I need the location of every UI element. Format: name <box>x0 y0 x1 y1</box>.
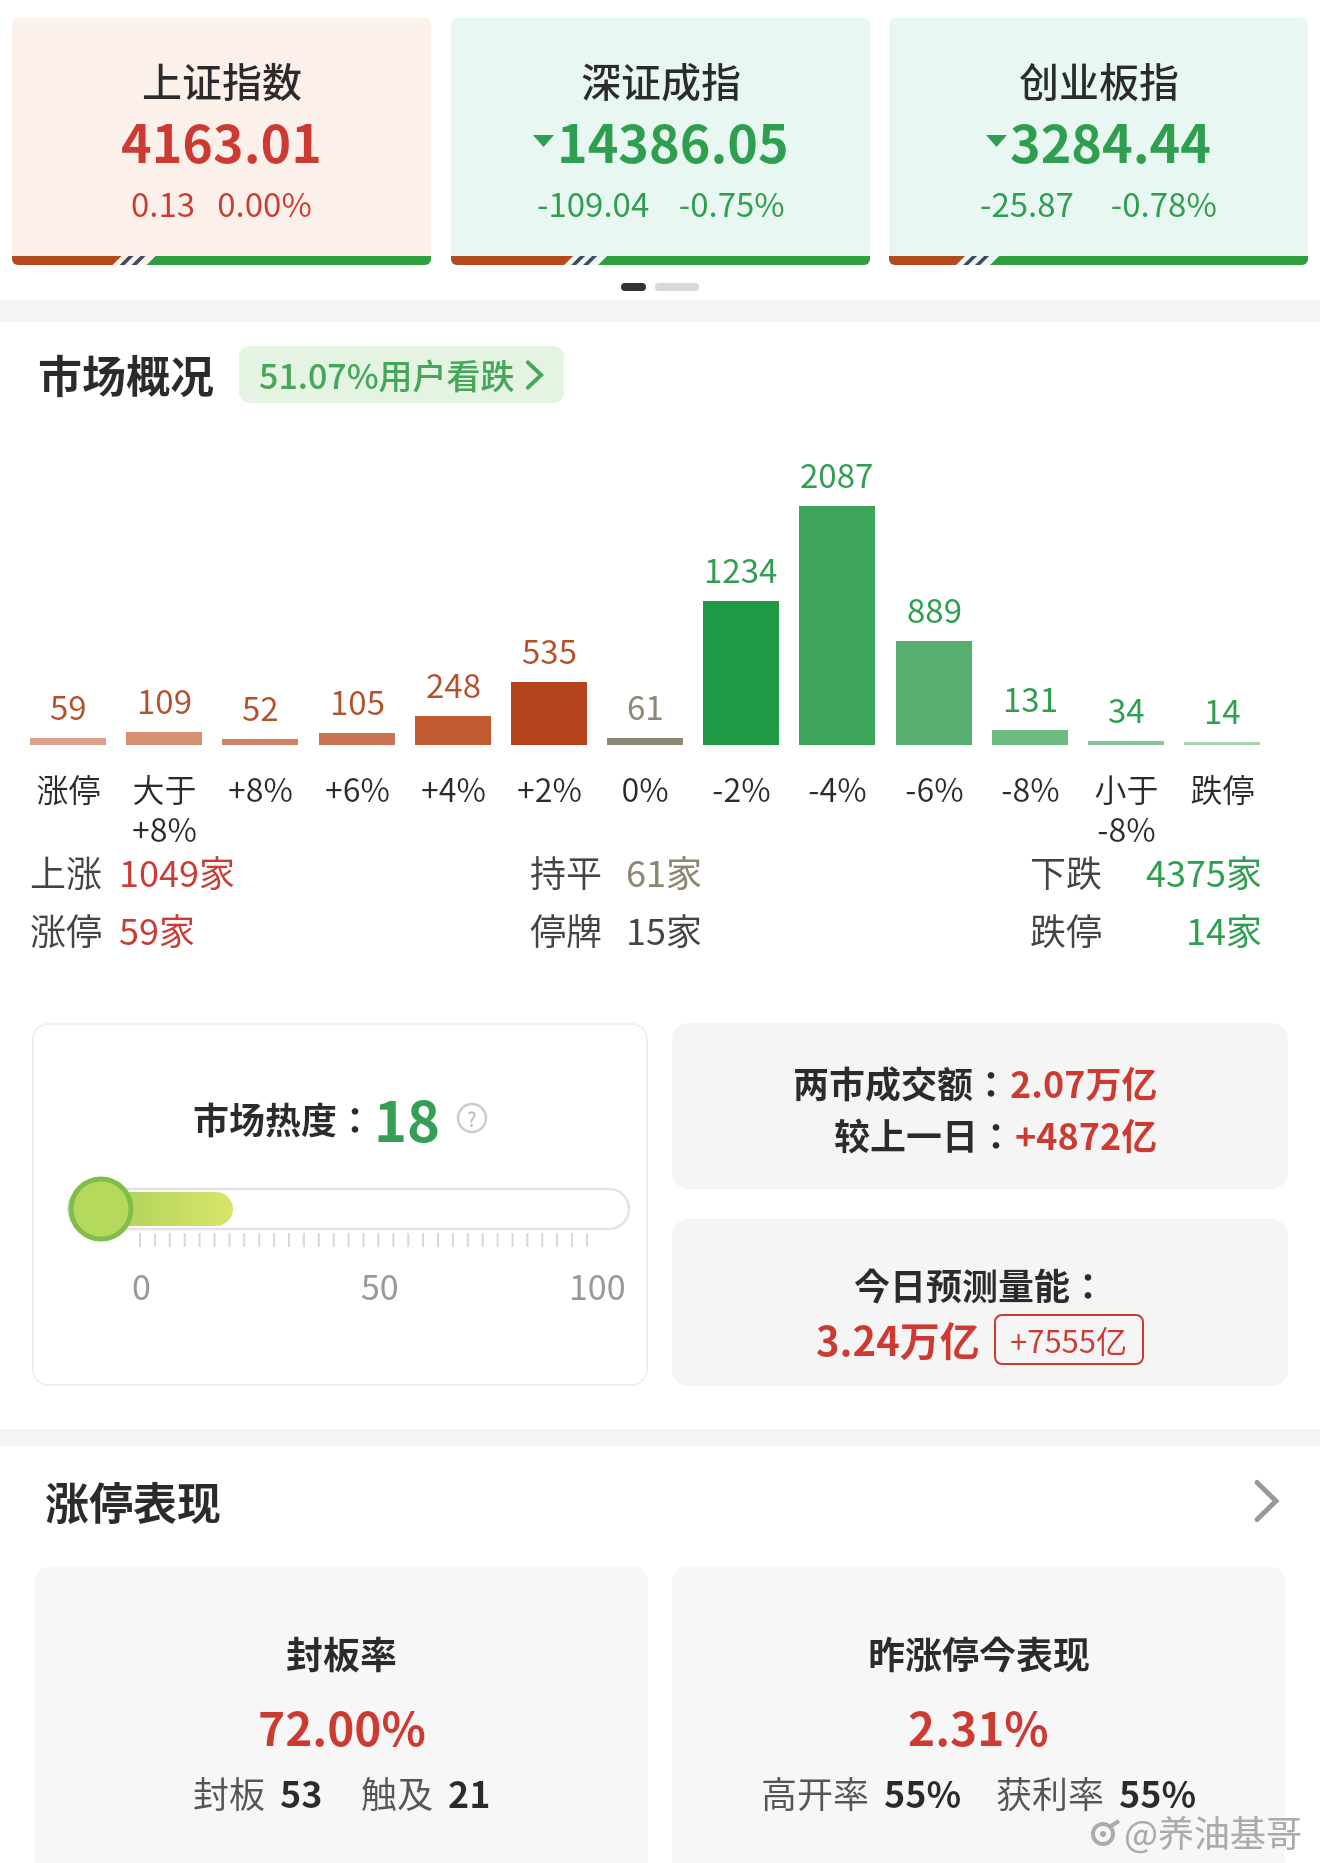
staticText: -8% <box>1001 765 1060 811</box>
staticText: 50 <box>361 1261 399 1310</box>
button[interactable]: 上证指数 <box>12 18 431 265</box>
staticText: 72.00% <box>258 1693 426 1760</box>
staticText: 2087 <box>800 450 874 498</box>
staticText: 1049家 <box>119 845 235 897</box>
staticText: 3284.44 <box>1010 103 1211 178</box>
staticText: 109 <box>137 676 192 724</box>
staticText: 100 <box>569 1261 626 1310</box>
staticText: 14386.05 <box>557 103 789 178</box>
button[interactable]: 昨涨停今表现 <box>672 1566 1285 1863</box>
staticText: 59家 <box>119 903 195 955</box>
staticText: 两市成交额： <box>793 1056 1010 1108</box>
staticText: 小于 -8% <box>1094 765 1159 851</box>
staticText: 涨停表现 <box>45 1469 221 1533</box>
button[interactable]: 市场热度： <box>32 1023 648 1386</box>
staticText: 持平 <box>530 845 603 897</box>
staticText: 4375家 <box>1146 845 1262 897</box>
staticText: 封板 <box>193 1766 266 1818</box>
staticText: 市场概况 <box>38 342 214 406</box>
staticText: 封板率 <box>286 1626 397 1680</box>
staticText: 55% <box>884 1766 962 1818</box>
staticText: @养油基哥 <box>1124 1805 1303 1857</box>
staticText: 涨停 <box>36 765 101 811</box>
staticText: 0% <box>621 765 669 811</box>
staticText: -109.04 -0.75% <box>537 179 785 227</box>
staticText: 248 <box>426 660 481 708</box>
staticText: 2.07万亿 <box>1010 1056 1158 1108</box>
button[interactable]: 创业板指 <box>889 18 1308 265</box>
staticText: 创业板指 <box>1019 51 1179 109</box>
staticText: +7555亿 <box>1010 1317 1128 1362</box>
staticText: 15家 <box>626 903 702 955</box>
button[interactable]: 两市成交额： <box>672 1023 1288 1189</box>
staticText: 停牌 <box>530 903 603 955</box>
staticText: 34 <box>1108 685 1145 733</box>
staticText: -2% <box>712 765 771 811</box>
staticText: 2.31% <box>908 1693 1049 1760</box>
staticText: 跌停 <box>1030 903 1103 955</box>
button[interactable]: 今日预测量能： <box>672 1219 1288 1386</box>
staticText: 今日预测量能： <box>854 1258 1107 1310</box>
staticText: 105 <box>330 677 385 725</box>
staticText: 535 <box>522 626 577 674</box>
staticText: +4% <box>421 765 486 811</box>
staticText: 18 <box>374 1077 441 1158</box>
staticText: 0.13 0.00% <box>131 179 312 227</box>
button[interactable]: 封板率 <box>35 1566 648 1863</box>
staticText: 14 <box>1204 686 1241 734</box>
staticText: 131 <box>1003 674 1058 722</box>
staticText: 较上一日： <box>834 1108 1015 1160</box>
staticText: 大于 +8% <box>132 765 197 851</box>
button[interactable]: 深证成指 <box>451 18 870 265</box>
staticText: 跌停 <box>1190 765 1255 811</box>
staticText: -4% <box>808 765 867 811</box>
staticText: 深证成指 <box>581 51 741 109</box>
staticText: ? <box>467 1104 477 1133</box>
staticText: +2% <box>517 765 582 811</box>
staticText: 涨停 <box>30 903 103 955</box>
staticText: 52 <box>242 683 279 731</box>
staticText: 3.24万亿 <box>816 1310 980 1368</box>
button[interactable]: 51.07%用户看跌 <box>239 346 564 403</box>
staticText: 上涨 <box>30 845 103 897</box>
staticText: 53 <box>280 1766 323 1818</box>
staticText: 上证指数 <box>142 51 302 109</box>
staticText: 获利率 <box>996 1766 1105 1818</box>
staticText: 61 <box>627 682 664 730</box>
staticText: 889 <box>907 585 962 633</box>
staticText: 下跌 <box>1030 845 1103 897</box>
staticText: 61家 <box>626 845 702 897</box>
staticText: -6% <box>905 765 964 811</box>
staticText: 0 <box>132 1261 151 1310</box>
staticText: -25.87 -0.78% <box>980 179 1217 227</box>
staticText: 14家 <box>1186 903 1262 955</box>
staticText: 昨涨停今表现 <box>868 1626 1090 1680</box>
staticText: 触及 <box>361 1766 434 1818</box>
staticText: 21 <box>448 1766 491 1818</box>
staticText: 4163.01 <box>121 103 322 178</box>
staticText: +8% <box>228 765 293 811</box>
staticText: 55% <box>1119 1766 1197 1818</box>
staticText: 59 <box>50 682 87 730</box>
staticText: 51.07%用户看跌 <box>259 350 515 399</box>
staticText: 市场热度： <box>193 1092 374 1144</box>
staticText: +4872亿 <box>1015 1108 1158 1160</box>
staticText: 1234 <box>704 545 778 593</box>
staticText: 高开率 <box>761 1766 870 1818</box>
staticText: +6% <box>325 765 390 811</box>
